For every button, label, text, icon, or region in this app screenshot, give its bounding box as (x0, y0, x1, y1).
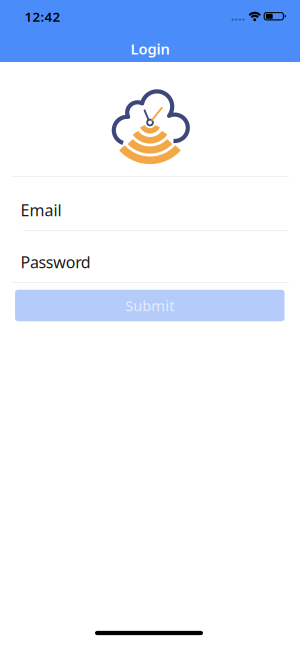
staticText: 12:42 (24, 8, 60, 25)
staticText: Submit (125, 296, 174, 315)
staticText: Password (20, 251, 91, 272)
button[interactable]: Submit (15, 290, 285, 321)
staticText: Email (20, 199, 61, 221)
button[interactable]: Password (0, 230, 300, 282)
button[interactable]: Email (0, 177, 300, 230)
staticText: Login (130, 39, 169, 59)
